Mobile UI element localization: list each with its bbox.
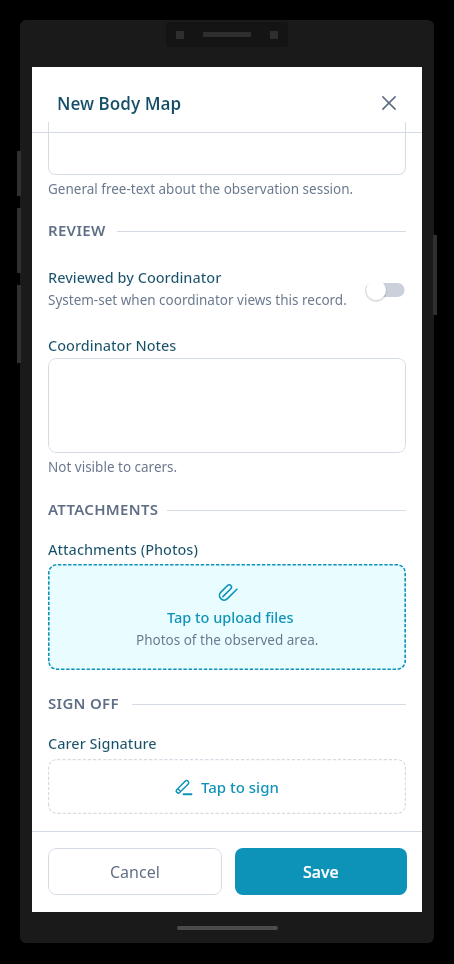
staticText: Not visible to carers. [48,458,178,476]
staticText: Reviewed by Coordinator [48,267,222,287]
staticText: General free-text about the observation … [48,180,354,198]
staticText: Save [303,861,339,883]
button[interactable] [48,358,406,453]
button[interactable]: Reviewed by Coordinator [362,275,406,305]
staticText: Attachments (Photos) [48,539,198,559]
button[interactable]: Tap to sign [48,759,406,814]
staticText: Carer Signature [48,733,157,753]
button[interactable]: Cancel [48,848,222,895]
staticText: Tap to upload files [167,607,294,627]
staticText: ATTACHMENTS [48,499,159,519]
staticText: Tap to sign [201,777,279,797]
staticText: New Body Map [57,92,182,115]
staticText: System-set when coordinator views this r… [48,291,347,309]
staticText: SIGN OFF [48,693,119,713]
staticText: REVIEW [48,220,106,240]
staticText: Cancel [110,861,160,883]
staticText: Coordinator Notes [48,335,177,355]
staticText: Photos of the observed area. [136,631,319,649]
button[interactable]: Close [369,83,409,123]
button[interactable]: Save [235,848,407,895]
button[interactable]: Tap to upload files [48,564,406,670]
